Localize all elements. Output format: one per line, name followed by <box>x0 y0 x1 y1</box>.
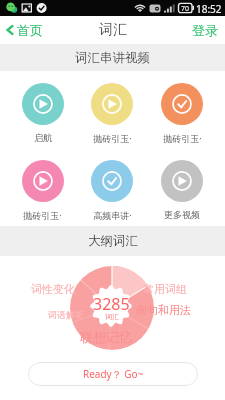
staticText: 词汇 <box>99 21 127 39</box>
staticText: 高频串讲· <box>93 209 132 221</box>
staticText: 抛砖引玉· <box>163 132 202 144</box>
button[interactable]: 常用词组 <box>143 282 187 296</box>
staticText: 启航 <box>34 132 52 143</box>
button[interactable]: 抛砖引玉· <box>77 83 147 144</box>
button[interactable]: 登录 <box>184 16 225 44</box>
button[interactable]: 词性变化 <box>31 282 75 296</box>
button[interactable]: 抛砖引玉· <box>8 160 77 221</box>
staticText: 3285 <box>93 293 130 315</box>
button[interactable]: 3285 <box>89 284 133 328</box>
staticText: Ready？ Go~ <box>83 367 144 381</box>
staticText: 18:52 <box>196 2 222 16</box>
staticText: 大纲词汇 <box>88 233 138 249</box>
staticText: 首页 <box>17 22 43 38</box>
staticText: 词汇串讲视频 <box>75 50 150 66</box>
button[interactable]: 词语解析 <box>48 309 84 320</box>
button[interactable]: 高频串讲· <box>77 160 147 221</box>
staticText: 抛砖引玉· <box>23 209 62 221</box>
staticText: 70 <box>181 4 190 14</box>
staticText: 词汇 <box>105 312 119 321</box>
staticText: 抛砖引玉· <box>93 132 132 144</box>
button[interactable]: 更多视频 <box>147 160 217 220</box>
button[interactable]: 例句和用法 <box>136 303 191 317</box>
button[interactable]: 联想记忆 <box>80 329 132 345</box>
staticText: 更多视频 <box>164 209 200 220</box>
button[interactable]: 启航 <box>8 83 77 143</box>
button[interactable]: 首页 <box>0 22 53 38</box>
button[interactable]: Ready？ Go~ <box>28 362 198 386</box>
button[interactable]: 抛砖引玉· <box>147 83 217 144</box>
